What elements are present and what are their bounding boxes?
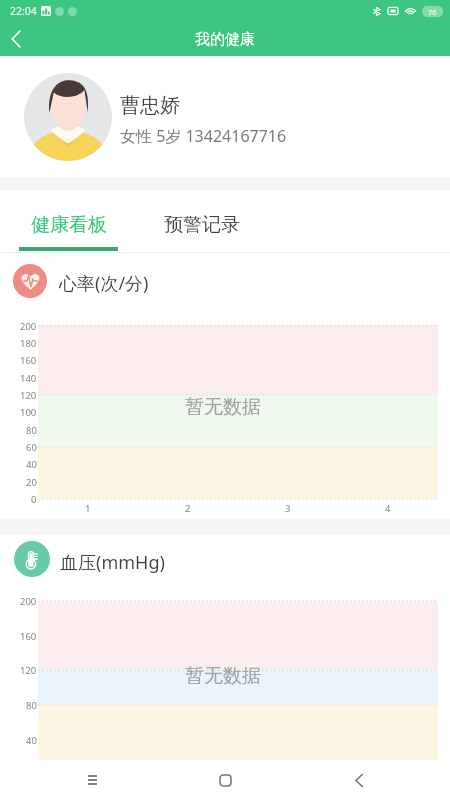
staticText: 76	[428, 7, 437, 17]
staticText: 60	[26, 441, 37, 454]
staticText: 暂无数据	[185, 664, 261, 688]
staticText: 3	[285, 502, 291, 514]
staticText: 4	[385, 502, 391, 514]
staticText: 160	[20, 630, 37, 643]
staticText: 180	[20, 337, 37, 350]
staticText: 0	[31, 493, 37, 506]
button[interactable]: Recent apps	[70, 766, 114, 794]
staticText: 100	[20, 406, 37, 419]
staticText: 40	[26, 458, 37, 471]
staticText: 80	[26, 699, 37, 712]
button[interactable]: 预警记录	[137, 190, 267, 252]
staticText: 120	[20, 664, 37, 677]
button[interactable]: Back	[0, 22, 34, 56]
staticText: 健康看板	[31, 213, 107, 237]
staticText: 200	[20, 595, 37, 608]
staticText: 女性 5岁 13424167716	[120, 125, 287, 147]
staticText: 预警记录	[164, 213, 240, 237]
staticText: 血压(mmHg)	[60, 550, 165, 575]
staticText: 20	[26, 476, 37, 489]
staticText: 160	[20, 354, 37, 367]
staticText: 暂无数据	[185, 395, 261, 419]
button[interactable]: 健康看板	[0, 190, 137, 252]
button[interactable]: 曹忠娇	[0, 56, 450, 177]
staticText: 曹忠娇	[120, 93, 180, 118]
staticText: 我的健康	[195, 30, 255, 49]
staticText: 200	[20, 320, 37, 333]
button[interactable]: Home	[203, 766, 247, 794]
button[interactable]: Back	[337, 766, 381, 794]
staticText: 40	[26, 734, 37, 747]
staticText: 140	[20, 372, 37, 385]
staticText: 2	[185, 502, 191, 514]
staticText: 120	[20, 389, 37, 402]
staticText: 80	[26, 424, 37, 437]
staticText: 22:04	[10, 4, 37, 18]
staticText: 1	[85, 502, 91, 514]
staticText: 心率(次/分)	[59, 271, 149, 296]
